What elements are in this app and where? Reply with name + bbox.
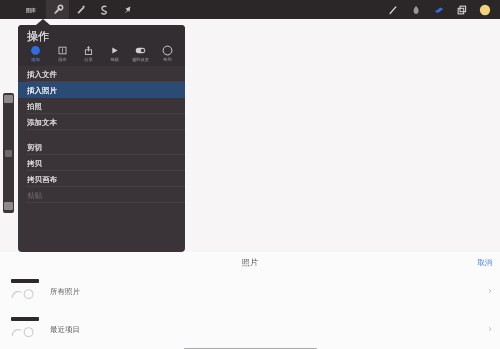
- button[interactable]: 颜色: [473, 0, 496, 19]
- staticText: 粘贴: [27, 191, 42, 200]
- staticText: 插入照片: [27, 86, 57, 95]
- staticText: 操作: [27, 29, 49, 43]
- staticText: 拷贝: [27, 159, 42, 168]
- button[interactable]: 图层: [450, 0, 473, 19]
- staticText: 辅助设置: [132, 57, 149, 62]
- staticText: 视频: [110, 57, 119, 62]
- staticText: 插入文件: [27, 70, 57, 79]
- button[interactable]: 绘图: [381, 0, 404, 19]
- button[interactable]: 变换: [115, 0, 138, 19]
- staticText: 帮助: [163, 57, 172, 62]
- staticText: 分享: [84, 57, 93, 62]
- staticText: 画布: [58, 57, 67, 62]
- staticText: 拍照: [27, 102, 42, 111]
- staticText: 最近项目: [50, 325, 80, 334]
- button[interactable]: 画布: [51, 45, 74, 62]
- staticText: 拷贝画布: [27, 175, 57, 184]
- staticText: 取消: [477, 258, 492, 267]
- staticText: 照片: [242, 257, 258, 267]
- button[interactable]: 帮助: [156, 45, 179, 62]
- staticText: 添加: [31, 57, 40, 62]
- staticText: 剪切: [27, 143, 42, 152]
- button[interactable]: 操作: [46, 0, 69, 19]
- button[interactable]: 添加: [24, 45, 47, 62]
- button[interactable]: 添加文本: [18, 114, 185, 130]
- button[interactable]: 拷贝: [18, 155, 185, 171]
- button[interactable]: 取消: [477, 258, 492, 267]
- button[interactable]: 辅助设置: [129, 45, 152, 62]
- button[interactable]: 粘贴: [18, 187, 185, 203]
- staticText: 图库: [26, 7, 36, 13]
- button[interactable]: 分享: [77, 45, 100, 62]
- staticText: 所有照片: [50, 287, 80, 296]
- button[interactable]: 拍照: [18, 98, 185, 114]
- button[interactable]: 画笔尺寸: [3, 93, 14, 213]
- button[interactable]: 调整: [69, 0, 92, 19]
- button[interactable]: 插入文件: [18, 66, 185, 82]
- button[interactable]: 剪切: [18, 139, 185, 155]
- button[interactable]: 擦除: [427, 0, 450, 19]
- button[interactable]: 插入照片: [18, 82, 185, 98]
- button[interactable]: 涂抹: [404, 0, 427, 19]
- button[interactable]: 图库: [22, 0, 40, 19]
- button[interactable]: 所有照片: [0, 272, 500, 310]
- button[interactable]: 拷贝画布: [18, 171, 185, 187]
- button[interactable]: 视频: [103, 45, 126, 62]
- staticText: 添加文本: [27, 118, 57, 127]
- button[interactable]: 选取: [92, 0, 115, 19]
- button[interactable]: 最近项目: [0, 310, 500, 348]
